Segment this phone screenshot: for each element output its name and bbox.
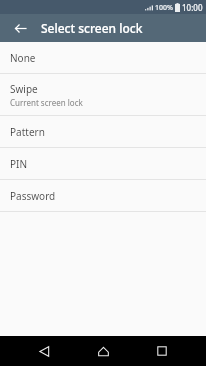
button[interactable]: Recent apps [147,336,177,366]
button[interactable]: Pattern [0,116,206,147]
button[interactable]: None [0,42,206,73]
staticText: Pattern [10,125,45,139]
button[interactable]: Navigate up [9,17,31,39]
staticText: Select screen lock [41,20,143,36]
button[interactable]: Home [88,336,118,366]
staticText: 100% [155,3,173,13]
staticText: 10:00 [182,2,203,13]
staticText: Swipe [10,82,38,96]
staticText: PIN [10,157,28,171]
button[interactable]: Swipe [0,74,206,115]
staticText: Password [10,189,56,203]
button[interactable]: Back [29,336,59,366]
button[interactable]: Password [0,180,206,211]
staticText: Current screen lock [10,97,83,108]
staticText: None [10,51,36,65]
button[interactable]: PIN [0,148,206,179]
